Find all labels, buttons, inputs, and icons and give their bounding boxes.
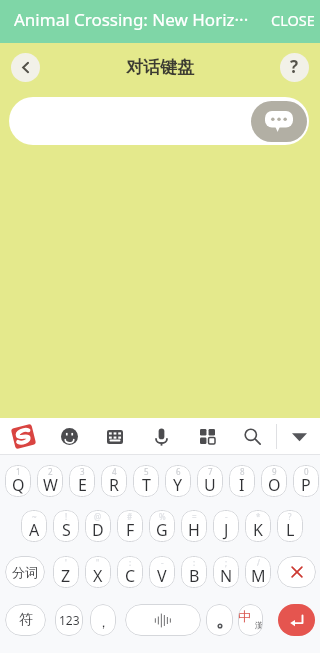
staticText: * xyxy=(256,511,261,522)
staticText: 0 xyxy=(304,466,309,477)
staticText: 6 xyxy=(176,466,181,477)
staticText: ' xyxy=(65,557,67,568)
staticText: 8 xyxy=(240,466,245,477)
button[interactable]: : xyxy=(181,556,207,588)
staticText: - xyxy=(225,511,228,522)
staticText: K xyxy=(253,519,263,541)
button[interactable]: : xyxy=(117,556,143,588)
staticText: 3 xyxy=(80,466,85,477)
staticText: ， xyxy=(97,614,110,630)
button[interactable]: 1 xyxy=(5,465,31,497)
button[interactable]: Delete xyxy=(277,556,316,588)
staticText: 对话键盘 xyxy=(126,57,194,78)
staticText: B xyxy=(189,565,200,587)
staticText: 符 xyxy=(19,611,33,629)
button[interactable]: CLOSE xyxy=(267,4,319,36)
button[interactable]: More apps xyxy=(190,418,224,455)
staticText: I xyxy=(239,474,245,496)
staticText: ? xyxy=(290,55,299,78)
staticText: 4 xyxy=(112,466,117,477)
button[interactable]: Search xyxy=(235,418,269,455)
staticText: H xyxy=(188,519,200,541)
button[interactable]: Emoji xyxy=(52,418,86,455)
button[interactable]: 3 xyxy=(69,465,95,497)
button[interactable]: 8 xyxy=(229,465,255,497)
staticText: J xyxy=(224,519,229,541)
button[interactable]: 6 xyxy=(165,465,191,497)
staticText: 1 xyxy=(16,466,21,477)
button[interactable]: 0 xyxy=(293,465,319,497)
staticText: CLOSE xyxy=(271,10,315,30)
staticText: L xyxy=(286,519,295,541)
button[interactable]: Enter xyxy=(278,604,315,636)
button[interactable]: 分词 xyxy=(5,556,45,588)
staticText: F xyxy=(126,519,135,541)
staticText: O xyxy=(268,474,281,496)
button[interactable]: # xyxy=(117,510,143,542)
button[interactable]: ~ xyxy=(21,510,47,542)
staticText: Y xyxy=(173,474,183,496)
staticText: : xyxy=(193,557,196,568)
staticText: Z xyxy=(61,565,71,587)
button[interactable]: Help xyxy=(280,53,309,82)
staticText: E xyxy=(78,474,87,496)
staticText: R xyxy=(109,474,119,496)
staticText: @ xyxy=(94,511,102,522)
button[interactable]: ， xyxy=(90,604,116,636)
staticText: = xyxy=(192,511,197,522)
button[interactable]: % xyxy=(149,510,175,542)
button[interactable]: Sogou xyxy=(6,418,40,455)
button[interactable]: - xyxy=(149,556,175,588)
button[interactable]: Keyboard layout xyxy=(98,418,132,455)
staticText: 漢 xyxy=(255,620,263,630)
staticText: G xyxy=(156,519,168,541)
staticText: ? xyxy=(288,511,292,522)
staticText: - xyxy=(161,557,164,568)
button[interactable]: Hide keyboard xyxy=(282,418,316,455)
button[interactable]: 符 xyxy=(5,604,46,636)
button[interactable]: Voice input xyxy=(144,418,178,455)
button[interactable]: 中 xyxy=(238,604,263,636)
staticText: ~ xyxy=(32,511,37,522)
staticText: Q xyxy=(12,474,25,496)
button[interactable]: 2 xyxy=(37,465,63,497)
staticText: 123 xyxy=(59,612,80,628)
staticText: M xyxy=(251,565,266,587)
button[interactable]: 7 xyxy=(197,465,223,497)
button[interactable]: 5 xyxy=(133,465,159,497)
staticText: 9 xyxy=(272,466,277,477)
button[interactable]: ; xyxy=(213,556,239,588)
button[interactable]: " xyxy=(85,556,111,588)
button[interactable]: Quick phrases xyxy=(251,101,307,142)
staticText: ! xyxy=(65,511,68,522)
staticText: W xyxy=(43,474,58,496)
other: Delete xyxy=(277,556,316,588)
button[interactable]: 123 xyxy=(55,604,83,636)
staticText: ; xyxy=(225,557,228,568)
staticText: # xyxy=(127,511,133,522)
button[interactable]: Space xyxy=(125,604,201,636)
staticText: 分词 xyxy=(12,564,38,580)
staticText: : xyxy=(129,557,132,568)
button[interactable]: ! xyxy=(53,510,79,542)
button[interactable]: / xyxy=(245,556,271,588)
staticText: N xyxy=(220,565,233,587)
button[interactable]: @ xyxy=(85,510,111,542)
button[interactable]: ? xyxy=(277,510,303,542)
button[interactable] xyxy=(206,604,233,636)
button[interactable]: = xyxy=(181,510,207,542)
staticText: C xyxy=(125,565,136,587)
staticText: 中 xyxy=(238,608,251,624)
other: Space xyxy=(125,604,201,636)
staticText: % xyxy=(159,511,166,522)
button[interactable]: - xyxy=(213,510,239,542)
button[interactable]: 4 xyxy=(101,465,127,497)
staticText: 2 xyxy=(48,466,53,477)
button[interactable]: 9 xyxy=(261,465,287,497)
button[interactable]: ' xyxy=(53,556,79,588)
staticText: V xyxy=(157,565,167,587)
staticText: S xyxy=(62,519,71,541)
button[interactable]: Back xyxy=(11,53,40,82)
staticText: T xyxy=(142,474,151,496)
button[interactable]: * xyxy=(245,510,271,542)
